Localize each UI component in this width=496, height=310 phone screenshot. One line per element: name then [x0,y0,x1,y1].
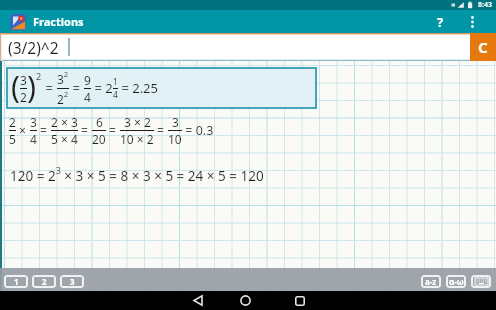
staticText: 5 × 4 [51,131,78,147]
staticText: = 0.3 [182,122,214,139]
staticText: = [78,122,92,138]
staticText: ? [437,13,444,31]
staticText: = 2 [91,79,113,97]
staticText: 8:43 [478,0,492,10]
button[interactable]: 2 [9,113,214,147]
button[interactable]: 120 = 23 × 3 × 5 = 8 × 3 × 5 = 24 × 5 = … [10,163,264,185]
staticText: Fractions [33,14,84,29]
button[interactable] [290,291,310,310]
button[interactable] [235,291,255,310]
staticText: × [16,122,30,138]
button[interactable]: C [470,33,496,61]
staticText: = [154,122,168,138]
button[interactable]: ? [427,10,453,33]
staticText: 4 [84,89,91,105]
staticText: 10 [168,131,182,147]
button[interactable] [188,291,208,310]
staticText: 2 [9,114,16,130]
staticText: = [37,122,51,138]
staticText: 4 [30,131,37,147]
button[interactable]: a-z [421,275,441,288]
staticText: ) [27,66,36,107]
staticText: 2 [20,89,27,105]
staticText: 20 [92,131,106,147]
button[interactable] [461,10,483,33]
button[interactable]: (3/2)^2 [0,33,470,61]
staticText: C [478,37,488,57]
staticText: 2 [36,70,42,82]
staticText: 32 [57,69,69,88]
staticText: 2 × 3 [51,114,78,130]
staticText: = 2.25 [118,79,158,97]
staticText: 1 [113,76,118,88]
staticText: 3 [20,72,27,88]
staticText: 5 [9,131,16,147]
button[interactable] [471,275,491,288]
staticText: 3 × 2 [124,114,151,130]
staticText: 10 × 2 [120,131,154,147]
staticText: a-z [425,276,437,287]
staticText: 2 [42,276,47,287]
staticText: 120 = 23 × 3 × 5 = 8 × 3 × 5 = 24 × 5 = … [10,164,264,185]
staticText: 4 [113,89,118,101]
button[interactable]: 3 [60,275,84,288]
staticText: = [106,122,120,138]
staticText: ( [11,66,20,107]
staticText: α-ω [449,276,464,287]
staticText: 3 [70,276,75,287]
staticText: 3 [172,114,179,130]
button[interactable]: ( [11,67,158,109]
staticText: = [42,79,57,97]
staticText: (3/2)^2 [8,37,59,58]
staticText: 22 [57,89,69,108]
staticText: = [69,79,84,97]
staticText: 9 [84,72,91,88]
staticText: 6 [96,114,103,130]
button[interactable]: 1 [4,275,28,288]
staticText: 1 [14,276,19,287]
button[interactable]: α-ω [446,275,466,288]
staticText: 3 [30,114,37,130]
button[interactable]: 2 [32,275,56,288]
